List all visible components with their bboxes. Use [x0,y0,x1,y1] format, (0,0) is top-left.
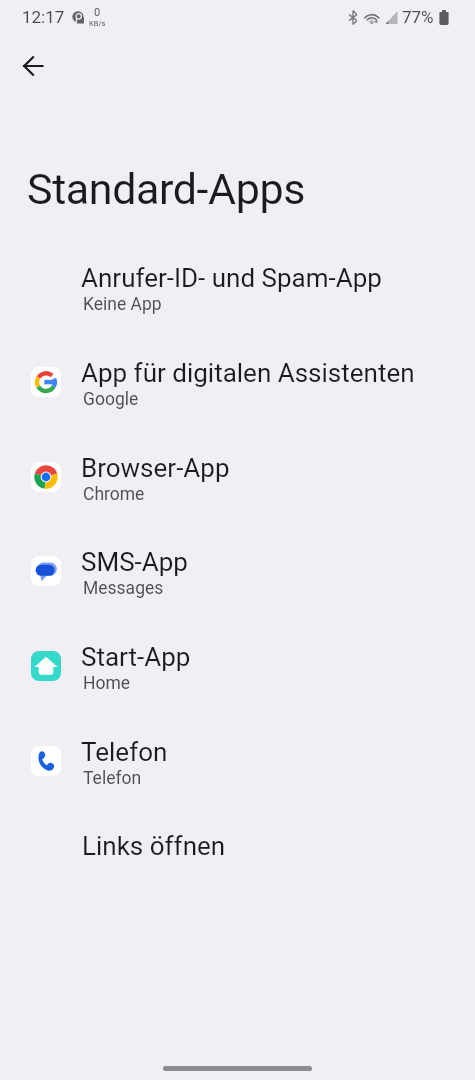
button[interactable]: Start-App [0,624,475,708]
staticText: Browser-App [81,453,230,483]
staticText: Standard-Apps [27,164,306,214]
button[interactable]: Telefon [0,719,475,803]
staticText: Keine App [83,294,162,315]
staticText: KB/s [89,19,106,28]
staticText: Home [83,673,131,694]
staticText: Chrome [83,484,145,505]
staticText: App für digitalen Assistenten [81,358,415,388]
staticText: Telefon [81,737,168,767]
staticText: SMS-App [81,547,188,577]
button[interactable]: Anrufer-ID- und Spam-App [0,245,475,329]
staticText: Telefon [83,768,142,789]
staticText: Links öffnen [82,831,226,861]
staticText: Start-App [81,642,191,672]
staticText: Google [83,389,139,410]
button[interactable]: Links öffnen [0,812,475,860]
button[interactable]: App für digitalen Assistenten [0,340,475,424]
staticText: 12:17 [22,7,65,27]
staticText: Anrufer-ID- und Spam-App [81,263,382,293]
button[interactable]: Zurück [9,42,56,89]
button[interactable]: Browser-App [0,435,475,519]
button[interactable]: SMS-App [0,529,475,613]
staticText: Messages [83,578,164,599]
staticText: 77% [402,7,434,27]
staticText: 0 [94,6,101,19]
